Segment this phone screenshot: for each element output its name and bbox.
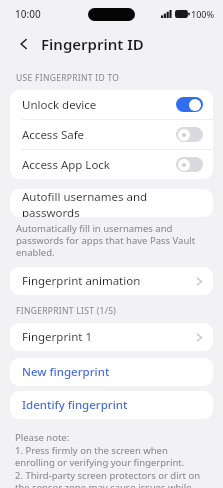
staticText: Fingerprint animation <box>22 273 141 289</box>
button[interactable]: Off <box>176 157 203 172</box>
button[interactable]: Access Safe <box>10 120 213 149</box>
staticText: New fingerprint <box>22 364 110 380</box>
staticText: 2. Third-party screen protectors or dirt… <box>15 469 208 488</box>
staticText: Autofill usernames and passwords <box>22 189 203 217</box>
button[interactable]: New fingerprint <box>10 358 213 386</box>
button[interactable]: Back <box>12 32 36 56</box>
staticText: Access Safe <box>22 127 85 143</box>
button[interactable]: Autofill usernames and passwords <box>10 189 213 217</box>
button[interactable]: Identify fingerprint <box>10 391 213 419</box>
staticText: Fingerprint ID <box>41 34 144 54</box>
staticText: 1. Press firmly on the screen when enrol… <box>15 444 208 469</box>
staticText: 100% <box>191 8 215 20</box>
staticText: Please note: <box>15 431 70 444</box>
button[interactable]: Fingerprint animation <box>10 267 213 295</box>
staticText: FINGERPRINT LIST (1/5) <box>16 305 117 317</box>
staticText: Fingerprint 1 <box>22 329 92 345</box>
button[interactable]: On <box>176 97 203 112</box>
staticText: Identify fingerprint <box>22 397 128 413</box>
staticText: 10:00 <box>15 7 41 21</box>
staticText: Automatically fill in usernames and pass… <box>16 222 207 259</box>
button[interactable]: Unlock device <box>10 90 213 119</box>
staticText: USE FINGERPRINT ID TO <box>16 72 120 84</box>
staticText: Unlock device <box>22 97 97 113</box>
staticText: Access App Lock <box>22 157 111 173</box>
button[interactable]: Off <box>176 127 203 142</box>
button[interactable]: Access App Lock <box>10 150 213 179</box>
button[interactable]: Fingerprint 1 <box>10 323 213 351</box>
